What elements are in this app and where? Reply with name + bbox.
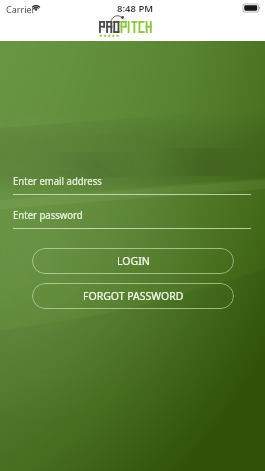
staticText: Enter password <box>13 207 83 223</box>
staticText: FORGOT PASSWORD <box>83 289 184 303</box>
staticText: LOGIN <box>117 254 150 268</box>
staticText: 8:48 PM <box>117 2 154 15</box>
staticText: Carrier <box>6 3 36 15</box>
button[interactable]: FORGOT PASSWORD <box>32 283 234 309</box>
staticText: Enter email address <box>13 173 103 189</box>
button[interactable]: LOGIN <box>32 248 234 274</box>
